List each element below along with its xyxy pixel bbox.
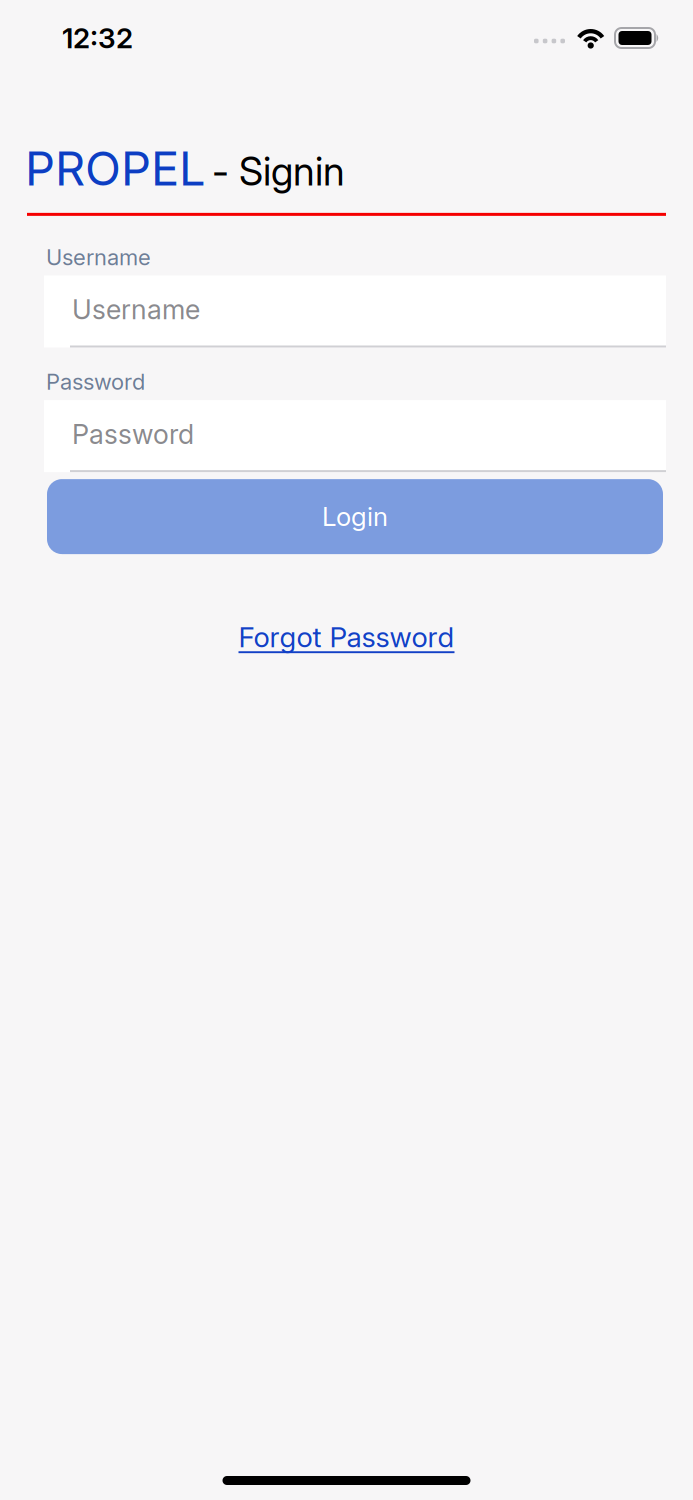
button[interactable]: Forgot Password [238, 620, 454, 654]
staticText: Forgot Password [238, 620, 454, 654]
staticText: Login [322, 501, 388, 532]
staticText: - Signin [212, 148, 345, 195]
staticText: Password [46, 368, 145, 395]
staticText: Username [46, 244, 151, 270]
button[interactable]: Login [47, 479, 663, 554]
button[interactable]: Username text field [44, 275, 666, 347]
staticText: Username [72, 293, 200, 326]
staticText: 12:32 [62, 21, 133, 55]
button[interactable]: Password text field [44, 400, 666, 472]
staticText: PROPEL [25, 140, 206, 197]
staticText: Password [72, 418, 194, 450]
